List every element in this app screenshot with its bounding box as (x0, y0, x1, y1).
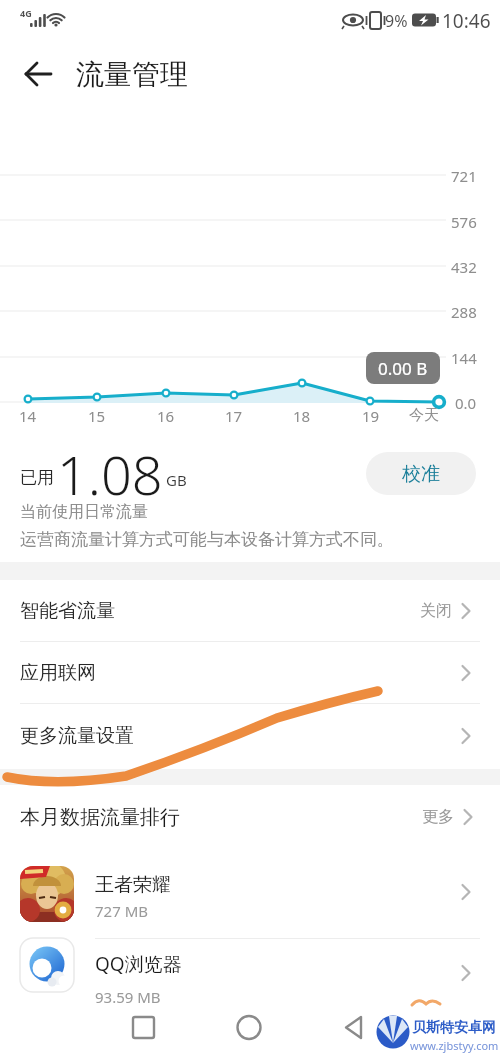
staticText: 关闭 (420, 601, 452, 621)
staticText: 应用联网 (20, 661, 96, 685)
staticText: 18 (293, 406, 311, 426)
staticText: 721 (451, 166, 477, 186)
button[interactable]: 本月数据流量排行 (0, 785, 500, 849)
button[interactable] (14, 52, 60, 96)
staticText: 今天 (409, 406, 439, 425)
staticText: 144 (451, 348, 477, 368)
staticText: 校准 (402, 462, 440, 486)
button[interactable]: 智能省流量 (0, 580, 500, 642)
staticText: 王者荣耀 (95, 873, 171, 897)
button[interactable] (120, 1005, 168, 1053)
staticText: 智能省流量 (20, 599, 115, 623)
staticText: QQ浏览器 (95, 951, 182, 977)
staticText: 4G (20, 7, 32, 19)
staticText: 1.08 (57, 437, 163, 511)
staticText: 15 (88, 406, 106, 426)
staticText: 0.00 B (378, 357, 428, 380)
staticText: 10:46 (442, 8, 491, 34)
staticText: 运营商流量计算方式可能与本设备计算方式不同。 (20, 529, 394, 550)
staticText: 9% (385, 10, 408, 32)
staticText: 16 (157, 406, 175, 426)
button[interactable]: 应用联网 (0, 642, 500, 704)
staticText: 更多流量设置 (20, 724, 134, 748)
staticText: 17 (225, 406, 243, 426)
staticText: 14 (19, 406, 37, 426)
staticText: 当前使用日常流量 (20, 502, 148, 522)
staticText: www.zjbstyy.com (410, 1038, 499, 1053)
button[interactable]: QQ浏览器 (0, 939, 500, 1007)
staticText: 432 (451, 257, 477, 277)
staticText: 288 (451, 302, 477, 322)
button[interactable]: 王者荣耀 (0, 850, 500, 938)
button[interactable] (225, 1005, 273, 1053)
staticText: 576 (451, 212, 477, 232)
button[interactable] (329, 1005, 377, 1053)
staticText: 贝斯特安卓网 (412, 1019, 496, 1037)
staticText: 流量管理 (76, 57, 188, 92)
staticText: 727 MB (95, 901, 148, 921)
staticText: 93.59 MB (95, 987, 161, 1007)
staticText: 已用 (20, 467, 54, 488)
button[interactable]: 更多流量设置 (0, 704, 500, 768)
staticText: GB (166, 470, 187, 490)
staticText: 19 (362, 406, 380, 426)
button[interactable]: 校准 (366, 452, 476, 495)
staticText: 本月数据流量排行 (20, 805, 180, 830)
staticText: 更多 (422, 807, 454, 827)
staticText: 0.0 (455, 393, 477, 413)
